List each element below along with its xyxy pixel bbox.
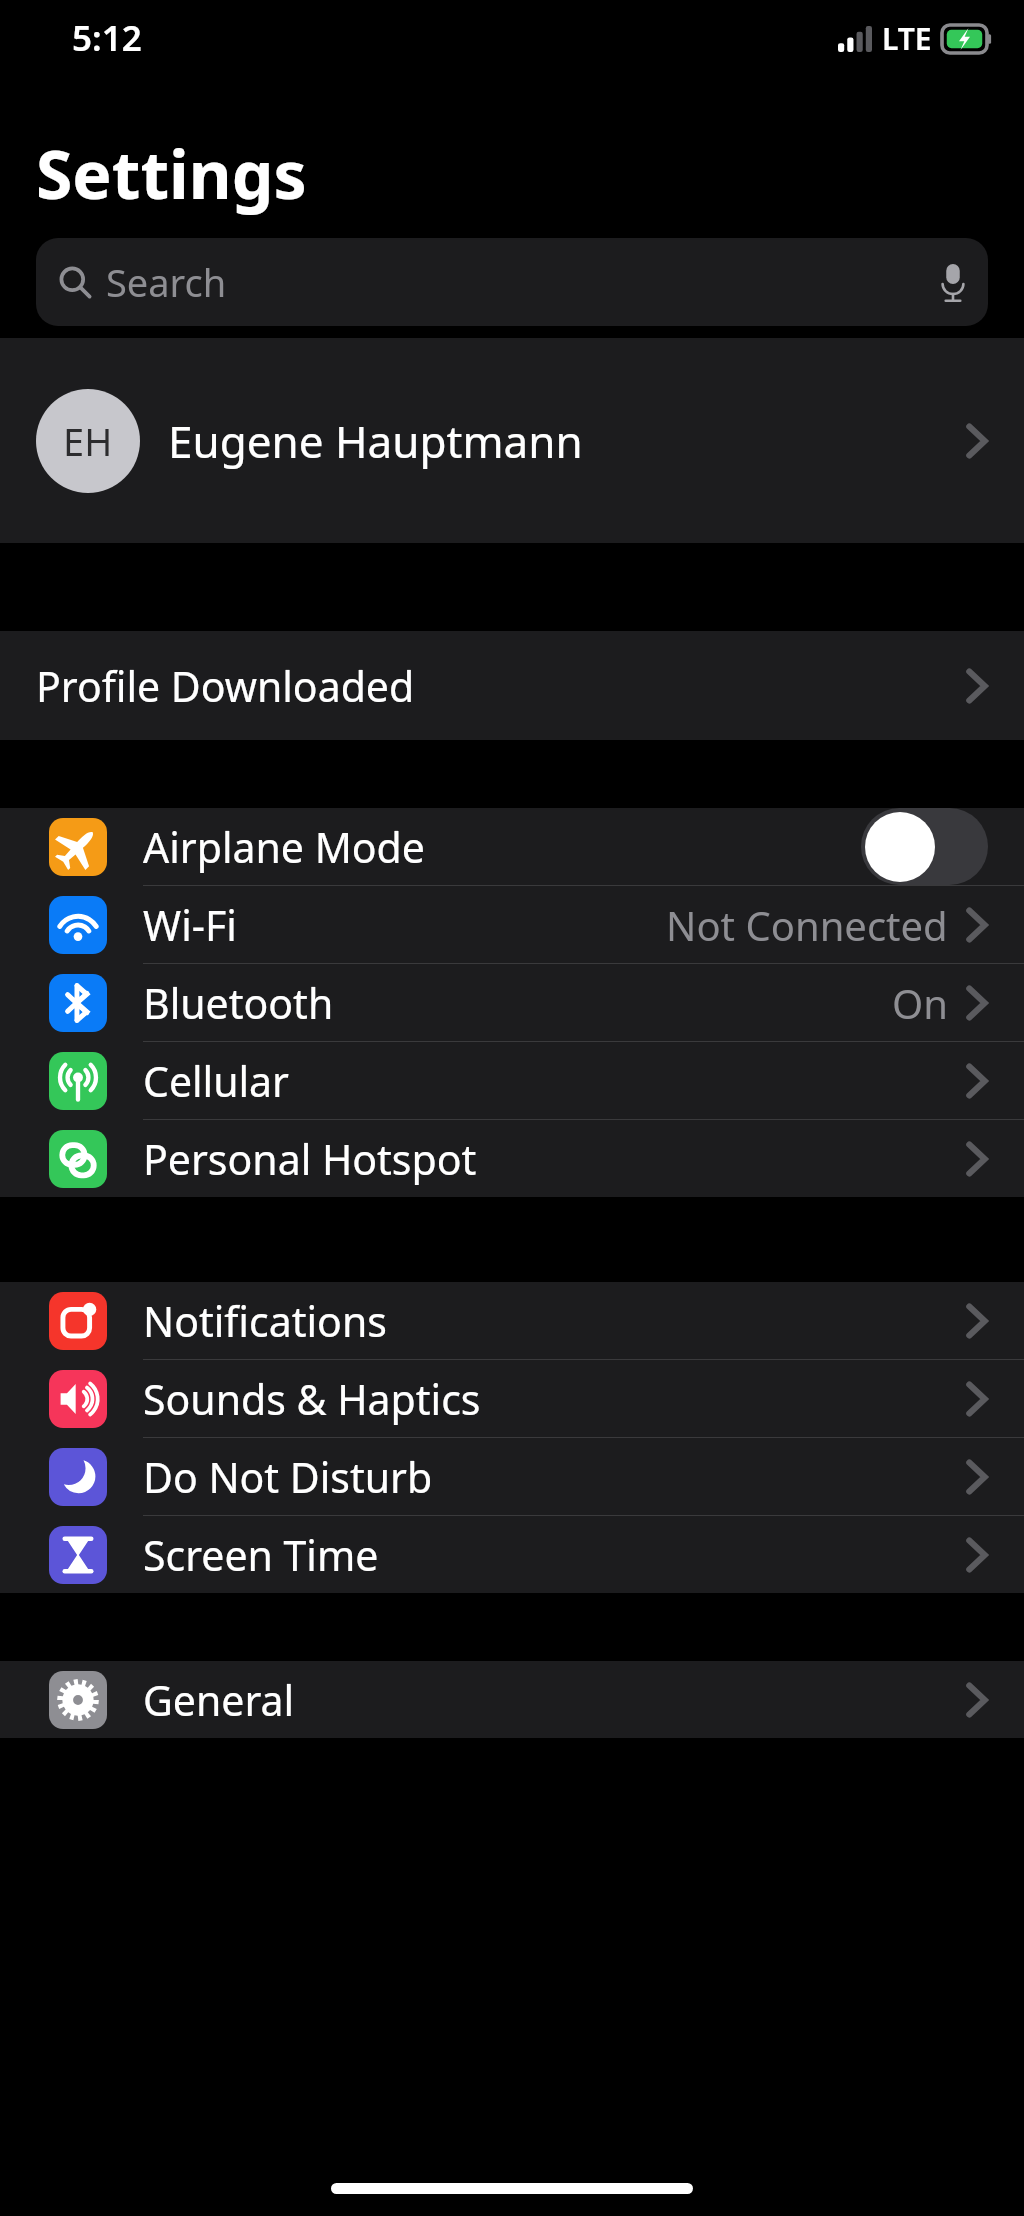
staticText: Profile Downloaded — [36, 658, 415, 714]
button[interactable]: Airplane Mode toggle — [861, 808, 988, 885]
staticText: General — [143, 1672, 295, 1728]
staticText: Bluetooth — [143, 975, 334, 1031]
staticText: LTE — [882, 18, 932, 59]
staticText: Settings — [36, 128, 307, 218]
staticText: Search — [106, 256, 227, 308]
button[interactable]: Cellular — [0, 1042, 1024, 1120]
staticText: Wi-Fi — [143, 897, 237, 953]
button[interactable]: Notifications — [0, 1282, 1024, 1360]
staticText: Not Connected — [666, 898, 948, 952]
staticText: 5:12 — [72, 14, 142, 62]
staticText: Sounds & Haptics — [143, 1371, 481, 1427]
button[interactable]: Search — [36, 238, 988, 326]
staticText: Airplane Mode — [143, 819, 425, 875]
staticText: Cellular — [143, 1053, 290, 1109]
staticText: Screen Time — [143, 1527, 379, 1583]
button[interactable]: Bluetooth — [0, 964, 1024, 1042]
button[interactable]: Airplane Mode — [0, 808, 1024, 886]
staticText: EH — [63, 415, 113, 467]
button[interactable]: Sounds & Haptics — [0, 1360, 1024, 1438]
staticText: On — [892, 976, 948, 1030]
staticText: Eugene Hauptmann — [168, 411, 583, 471]
button[interactable]: Screen Time — [0, 1516, 1024, 1593]
button[interactable]: Profile Downloaded — [0, 631, 1024, 740]
button[interactable]: Wi-Fi — [0, 886, 1024, 964]
button[interactable]: Personal Hotspot — [0, 1120, 1024, 1197]
button[interactable]: General — [0, 1661, 1024, 1738]
staticText: Personal Hotspot — [143, 1131, 477, 1187]
button[interactable]: Do Not Disturb — [0, 1438, 1024, 1516]
staticText: Notifications — [143, 1293, 387, 1349]
staticText: Do Not Disturb — [143, 1449, 433, 1505]
button[interactable]: EH — [0, 338, 1024, 543]
